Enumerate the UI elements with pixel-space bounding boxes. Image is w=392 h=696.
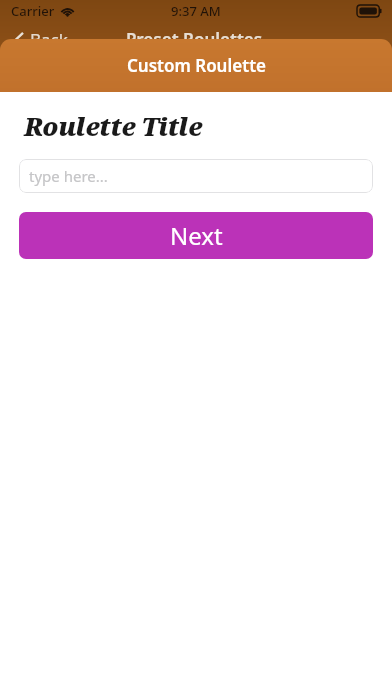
- staticText: Preset Roulettes: [68, 28, 320, 51]
- button[interactable]: Next: [19, 212, 373, 259]
- button[interactable]: Back: [14, 28, 68, 51]
- staticText: Next: [170, 219, 223, 252]
- staticText: 9:37 AM: [171, 2, 221, 20]
- staticText: Carrier: [11, 2, 55, 20]
- staticText: Custom Roulette: [127, 54, 266, 77]
- staticText: Back: [30, 28, 68, 51]
- button[interactable]: type here...: [19, 159, 373, 193]
- staticText: type here...: [29, 166, 108, 186]
- staticText: Roulette Title: [24, 109, 203, 143]
